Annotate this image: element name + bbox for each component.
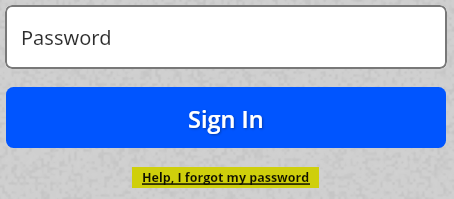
- button[interactable]: Password input field: [5, 5, 447, 69]
- button[interactable]: Help, I forgot my password: [132, 167, 319, 188]
- staticText: Sign In: [188, 103, 264, 135]
- button[interactable]: Sign In: [6, 87, 446, 148]
- staticText: Password: [21, 24, 112, 51]
- staticText: Help, I forgot my password: [142, 169, 310, 186]
